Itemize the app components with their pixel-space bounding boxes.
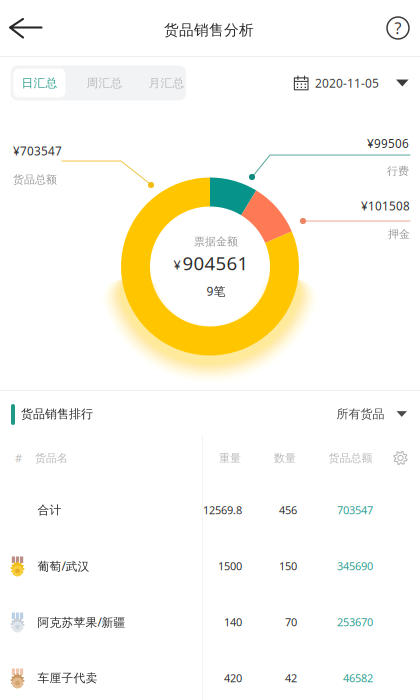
staticText: 1500: [218, 559, 242, 573]
button[interactable]: 周汇总: [76, 69, 134, 97]
staticText: 703547: [337, 503, 373, 517]
staticText: 所有货品: [336, 406, 384, 421]
staticText: 货品总额: [13, 173, 57, 186]
staticText: 456: [279, 503, 297, 517]
staticText: 420: [224, 671, 242, 685]
staticText: 葡萄/武汉: [37, 558, 89, 574]
button[interactable]: 车厘子代卖: [0, 650, 420, 700]
staticText: 行费: [387, 164, 409, 178]
staticText: 9笔: [206, 283, 225, 299]
staticText: ¥101508: [361, 198, 410, 214]
staticText: 253670: [337, 615, 373, 629]
staticText: 票据金额: [194, 235, 238, 248]
staticText: ¥703547: [13, 143, 62, 159]
button[interactable]: 列设置: [383, 441, 417, 475]
staticText: 2020-11-05: [315, 75, 379, 91]
staticText: 42: [285, 671, 297, 685]
staticText: 70: [285, 615, 297, 629]
staticText: 货品销售分析: [164, 21, 254, 39]
staticText: ¥99506: [367, 135, 409, 151]
button[interactable]: 2020-11-05: [280, 64, 420, 102]
staticText: 150: [279, 559, 297, 573]
button[interactable]: 帮助: [377, 7, 419, 49]
staticText: 阿克苏苹果/新疆: [37, 614, 125, 630]
staticText: 押金: [388, 227, 410, 241]
staticText: #: [15, 451, 22, 465]
staticText: 货品总额: [328, 451, 372, 465]
staticText: 月汇总: [148, 76, 184, 90]
staticText: 数量: [274, 451, 296, 465]
button[interactable]: 日汇总: [13, 69, 65, 97]
button[interactable]: 合计: [0, 482, 420, 538]
staticText: 货品名: [35, 451, 68, 465]
staticText: 车厘子代卖: [37, 671, 97, 685]
button[interactable]: 阿克苏苹果/新疆: [0, 594, 420, 650]
button[interactable]: 返回: [3, 6, 49, 50]
button[interactable]: 月汇总: [137, 69, 195, 97]
staticText: 345690: [337, 559, 373, 573]
button[interactable]: 所有货品: [297, 396, 407, 432]
staticText: 904561: [182, 250, 248, 276]
staticText: 周汇总: [87, 76, 123, 90]
staticText: 46582: [343, 671, 373, 685]
staticText: ?: [394, 17, 401, 39]
staticText: 12569.8: [203, 503, 242, 517]
staticText: ¥: [173, 256, 180, 273]
staticText: 货品销售排行: [21, 406, 93, 421]
staticText: 合计: [37, 503, 61, 517]
staticText: 重量: [219, 451, 241, 465]
staticText: 140: [224, 615, 242, 629]
staticText: 日汇总: [21, 76, 57, 90]
button[interactable]: 葡萄/武汉: [0, 538, 420, 594]
